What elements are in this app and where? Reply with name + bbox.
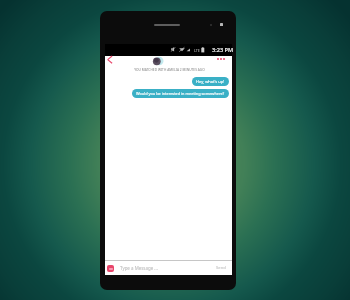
button[interactable]: Back: [105, 56, 119, 68]
button[interactable]: Hey, what's up!: [192, 77, 229, 86]
staticText: Send: [216, 265, 226, 271]
staticText: 3:23 PM: [212, 46, 234, 54]
staticText: Hey, what's up!: [196, 79, 225, 84]
staticText: YOU MATCHED WITH AMELIA 2 MINUTES AGO: [134, 68, 205, 72]
button[interactable]: More options: [217, 58, 225, 60]
button[interactable]: Profile photo: [153, 57, 163, 65]
staticText: Would you be interested in meeting somew…: [136, 91, 225, 96]
staticText: LTE: [194, 48, 200, 53]
button[interactable]: Send: [216, 265, 232, 271]
button[interactable]: Would you be interested in meeting somew…: [132, 89, 229, 98]
button[interactable]: Emoji: [107, 265, 114, 272]
staticText: Type a Message ...: [120, 265, 158, 271]
